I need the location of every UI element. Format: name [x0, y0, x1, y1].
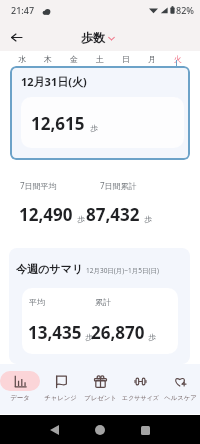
button[interactable]: データ: [0, 364, 40, 414]
button[interactable]: Home: [90, 420, 110, 440]
button[interactable]: ヘルスケア: [160, 364, 200, 414]
staticText: データ: [10, 394, 30, 402]
staticText: 火: [174, 54, 182, 64]
staticText: 土: [96, 54, 104, 64]
button[interactable]: 7日間平均: [8, 172, 191, 238]
staticText: 月: [148, 54, 156, 64]
button[interactable]: チャレンジ: [40, 364, 80, 414]
button[interactable]: 木: [35, 51, 61, 66]
button[interactable]: Back: [44, 420, 64, 440]
staticText: 歩: [77, 214, 85, 224]
staticText: 水: [18, 54, 26, 64]
staticText: 7日間平均: [20, 180, 57, 191]
staticText: 12月30日(月)~1月5日(日): [86, 266, 159, 275]
button[interactable]: 土: [87, 51, 113, 66]
staticText: 13,435: [28, 321, 82, 344]
button[interactable]: エクササイズ: [120, 364, 160, 414]
staticText: 累計: [95, 297, 111, 307]
button[interactable]: 火: [165, 51, 191, 66]
staticText: 歩: [90, 123, 98, 133]
button[interactable]: プレゼント: [80, 364, 120, 414]
staticText: 12月31日(火): [21, 74, 87, 89]
button[interactable]: 12月31日(火): [10, 66, 190, 160]
staticText: 7日間累計: [100, 180, 137, 191]
staticText: 歩数: [81, 30, 105, 45]
button[interactable]: 水: [9, 51, 35, 66]
staticText: ヘルスケア: [164, 394, 197, 402]
staticText: 82%: [176, 4, 194, 16]
button[interactable]: Recents: [135, 420, 155, 440]
button[interactable]: 月: [139, 51, 165, 66]
staticText: チャレンジ: [44, 394, 77, 402]
staticText: 今週のサマリ: [16, 262, 84, 276]
staticText: 平均: [29, 297, 45, 307]
staticText: 21:47: [11, 4, 35, 16]
button[interactable]: Back: [4, 25, 28, 49]
staticText: 歩: [148, 332, 156, 342]
button[interactable]: 日: [113, 51, 139, 66]
staticText: 12,490: [19, 203, 73, 226]
staticText: 87,432: [86, 203, 140, 226]
staticText: 木: [44, 54, 52, 64]
staticText: 26,870: [91, 321, 145, 344]
staticText: 12,615: [31, 112, 85, 135]
staticText: エクササイズ: [122, 394, 159, 402]
staticText: 日: [122, 54, 130, 64]
staticText: プレゼント: [84, 394, 117, 402]
button[interactable]: 金: [61, 51, 87, 66]
staticText: 歩: [85, 332, 93, 342]
button[interactable]: 今週のサマリ: [9, 248, 190, 364]
staticText: 歩: [144, 214, 152, 224]
button[interactable]: 歩数: [81, 30, 115, 45]
staticText: 金: [70, 54, 78, 64]
